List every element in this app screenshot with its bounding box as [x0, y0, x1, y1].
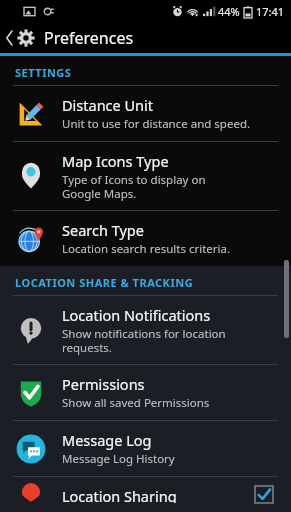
staticText: Distance Unit	[62, 95, 154, 115]
button[interactable]: Message Log	[0, 421, 291, 476]
staticText: Show notifications for location requests…	[62, 326, 226, 355]
button[interactable]: Location Sharing toggle	[247, 486, 281, 503]
button[interactable]: Map Icons Type	[0, 142, 291, 210]
button[interactable]: Search Type	[0, 211, 291, 266]
staticText: Search Type	[62, 220, 144, 240]
button[interactable]: Distance Unit	[0, 86, 291, 141]
staticText: Preferences	[44, 27, 134, 49]
button[interactable]: Location Sharing	[0, 477, 291, 512]
staticText: LOCATION SHARE & TRACKING	[15, 275, 194, 290]
staticText: SETTINGS	[15, 65, 72, 80]
staticText: Type of Icons to display on Google Maps.	[62, 172, 206, 201]
staticText: Map Icons Type	[62, 151, 169, 171]
staticText: Unit to use for distance and speed.	[62, 116, 251, 132]
staticText: 17:41	[256, 4, 285, 19]
staticText: Message Log History	[62, 451, 175, 467]
staticText: Location Sharing	[62, 486, 177, 503]
button[interactable]: Back	[0, 22, 40, 53]
button[interactable]: Permissions	[0, 365, 291, 420]
staticText: 44%	[218, 4, 240, 19]
staticText: Location Notifications	[62, 305, 211, 325]
staticText: Location search results criteria.	[62, 241, 231, 257]
button[interactable]: Location Notifications	[0, 296, 291, 364]
staticText: Message Log	[62, 430, 152, 450]
staticText: Permissions	[62, 374, 145, 394]
staticText: Show all saved Permissions	[62, 395, 210, 411]
